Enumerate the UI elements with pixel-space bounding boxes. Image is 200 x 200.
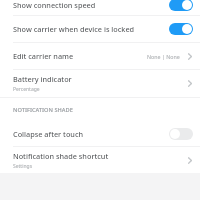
button[interactable]: Show carrier when device is locked — [0, 16, 200, 42]
staticText: NOTIFICATION SHADE — [13, 106, 73, 114]
staticText: Settings — [13, 163, 33, 170]
button[interactable]: Collapse after touch — [0, 122, 200, 146]
button[interactable]: Notification shade shortcut — [0, 147, 200, 173]
staticText: Show connection speed — [13, 0, 96, 10]
staticText: Notification shade shortcut — [13, 151, 109, 161]
staticText: Collapse after touch — [13, 129, 169, 139]
staticText: Battery indicator — [13, 74, 72, 84]
staticText: Show carrier when device is locked — [13, 24, 169, 34]
button[interactable]: Edit carrier name — [0, 43, 200, 69]
staticText: Edit carrier name — [13, 51, 74, 61]
button[interactable]: Show connection speed — [0, 0, 200, 15]
staticText: Percentage — [13, 86, 40, 93]
button[interactable]: Battery indicator — [0, 70, 200, 97]
staticText: None | None — [147, 53, 180, 60]
